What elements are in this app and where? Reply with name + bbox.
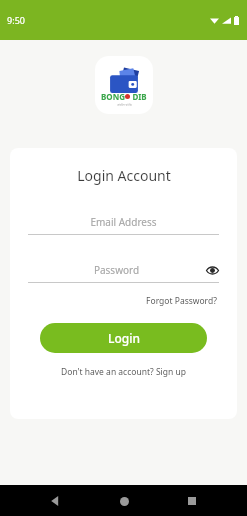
staticText: Don't have an account? Sign up xyxy=(61,366,186,378)
staticText: মোবাইল ব্যাংকিং xyxy=(117,103,132,107)
staticText: DIB xyxy=(130,91,147,102)
button[interactable]: Home xyxy=(111,488,137,514)
button[interactable]: Forgot Password? xyxy=(144,293,219,309)
button[interactable]: Login xyxy=(40,323,207,353)
button[interactable]: Don't have an account? Sign up xyxy=(59,364,188,380)
staticText: Login Account xyxy=(77,166,171,185)
staticText: Login xyxy=(108,330,140,346)
button[interactable]: Email Address xyxy=(28,215,219,235)
staticText: Email Address xyxy=(28,215,219,229)
staticText: Password xyxy=(28,263,205,277)
staticText: Forgot Password? xyxy=(146,295,217,307)
button[interactable]: Password xyxy=(28,263,219,283)
button[interactable]: Show password xyxy=(205,263,219,277)
staticText: 9:50 xyxy=(7,14,25,26)
button[interactable]: Recent apps xyxy=(179,488,205,514)
button[interactable]: Back xyxy=(42,488,68,514)
staticText: BONG xyxy=(101,91,125,102)
